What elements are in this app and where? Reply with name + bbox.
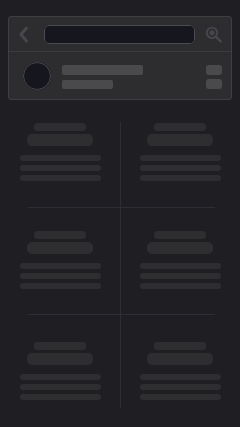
button[interactable] xyxy=(0,231,120,289)
button[interactable] xyxy=(120,123,240,181)
button[interactable] xyxy=(0,342,120,400)
button[interactable] xyxy=(0,123,120,181)
button[interactable]: Back xyxy=(9,20,37,48)
button[interactable] xyxy=(120,342,240,400)
button[interactable] xyxy=(120,231,240,289)
button[interactable] xyxy=(44,25,195,44)
button[interactable]: Search xyxy=(197,19,227,49)
